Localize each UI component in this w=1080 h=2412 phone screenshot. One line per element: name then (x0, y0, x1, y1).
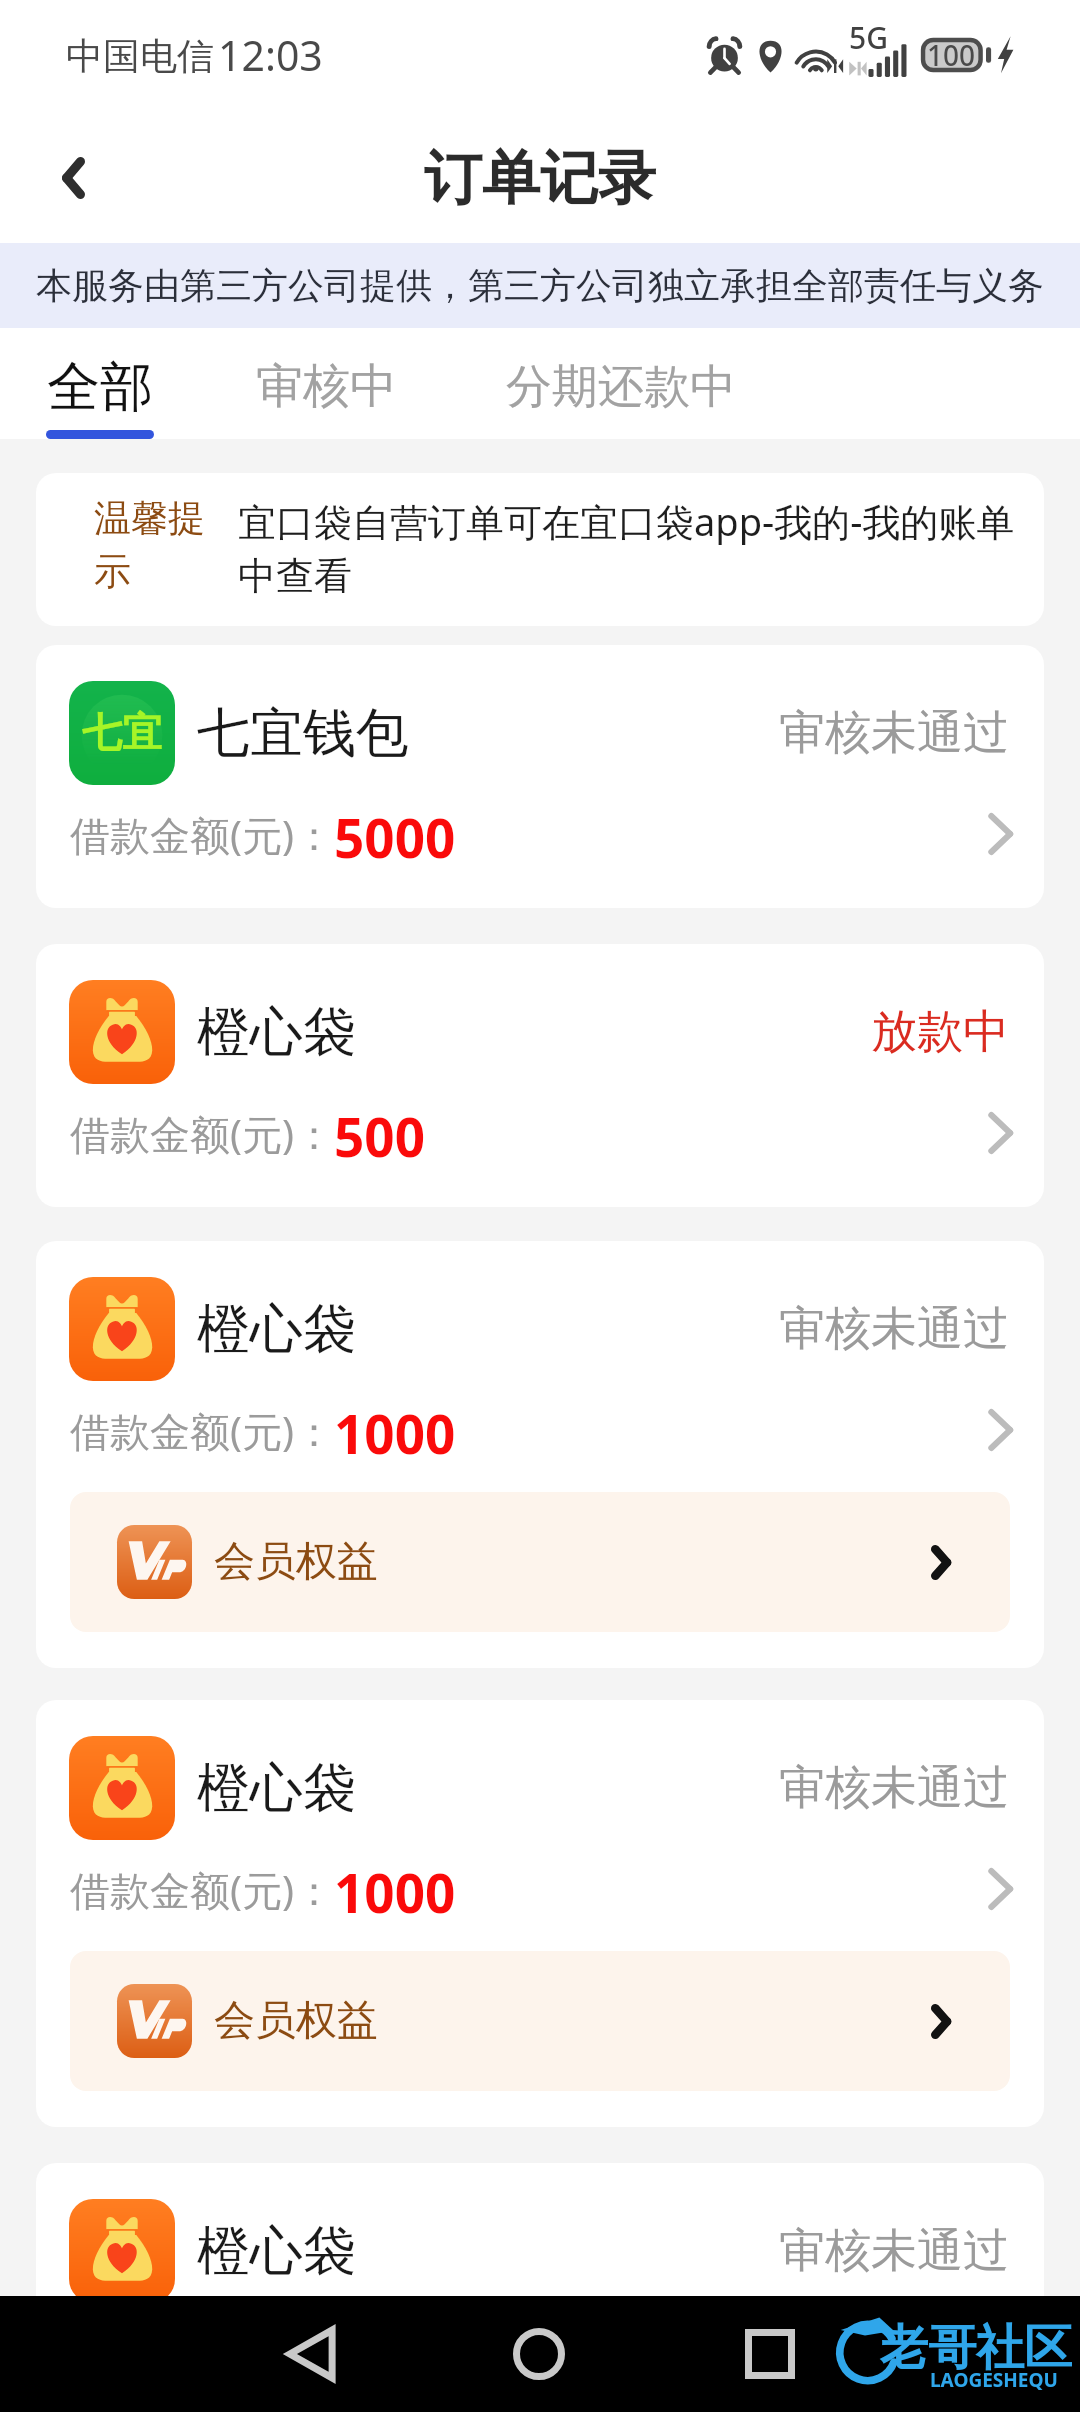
button[interactable]: 橙心袋 (36, 2163, 1044, 2412)
button[interactable]: 橙心袋 (36, 944, 1044, 1207)
staticText: 审核未通过 (779, 1300, 1009, 1358)
staticText: 全部 (47, 354, 153, 421)
staticText: 借款金额(元)： (70, 1106, 334, 1161)
staticText: 会员权益 (214, 1536, 378, 1588)
staticText: 橙心袋 (197, 999, 356, 1066)
staticText: LAOGESHEQU (930, 2367, 1058, 2393)
button[interactable]: Home (484, 2299, 594, 2409)
staticText: 1000 (334, 1397, 456, 1463)
staticText: 借款金额(元)： (70, 2325, 334, 2380)
button[interactable]: 橙心袋 (36, 1241, 1044, 1668)
staticText: 温馨提示 (94, 495, 206, 595)
button[interactable]: Back (0, 110, 147, 243)
staticText: 橙心袋 (197, 1296, 356, 1363)
button[interactable]: 全部 (46, 328, 154, 439)
button[interactable]: 审核中 (256, 328, 397, 439)
button[interactable]: 橙心袋 (36, 1700, 1044, 2127)
staticText: 审核未通过 (779, 2222, 1009, 2280)
staticText: 橙心袋 (197, 1755, 356, 1822)
staticText: 分期还款中 (506, 358, 736, 416)
button[interactable]: Back (256, 2299, 366, 2409)
button[interactable]: Recents (715, 2299, 825, 2409)
staticText: 宜口袋自营订单可在宜口袋app-我的-我的账单中查看 (238, 495, 1038, 601)
button[interactable]: 会员权益 (70, 1951, 1010, 2091)
staticText: 审核中 (256, 357, 397, 416)
staticText: 100 (927, 36, 976, 74)
button[interactable]: 七宜 (36, 645, 1044, 908)
staticText: 审核未通过 (779, 704, 1009, 762)
staticText: 老哥社区 (880, 2318, 1072, 2378)
staticText: 12:03 (218, 27, 323, 83)
button[interactable]: 分期还款中 (506, 328, 736, 439)
staticText: 橙心袋 (197, 2218, 356, 2285)
staticText: 七宜 (82, 707, 162, 757)
staticText: 5G (849, 17, 888, 58)
staticText: 借款金额(元)： (70, 807, 334, 862)
staticText: 5000 (334, 801, 456, 867)
staticText: 1000 (334, 2319, 456, 2385)
staticText: 500 (334, 1100, 425, 1166)
staticText: 1000 (334, 1856, 456, 1922)
button[interactable]: 温馨提示 (36, 473, 1044, 626)
staticText: 会员权益 (214, 1995, 378, 2047)
button[interactable]: 会员权益 (70, 1492, 1010, 1632)
staticText: 放款中 (871, 1003, 1009, 1061)
staticText: 七宜钱包 (197, 700, 409, 767)
staticText: 审核未通过 (779, 1759, 1009, 1817)
staticText: 借款金额(元)： (70, 1403, 334, 1458)
staticText: 借款金额(元)： (70, 1862, 334, 1917)
staticText: 订单记录 (424, 142, 656, 215)
staticText: 中国电信 (66, 33, 214, 80)
staticText: 本服务由第三方公司提供，第三方公司独立承担全部责任与义务 (36, 263, 1044, 308)
